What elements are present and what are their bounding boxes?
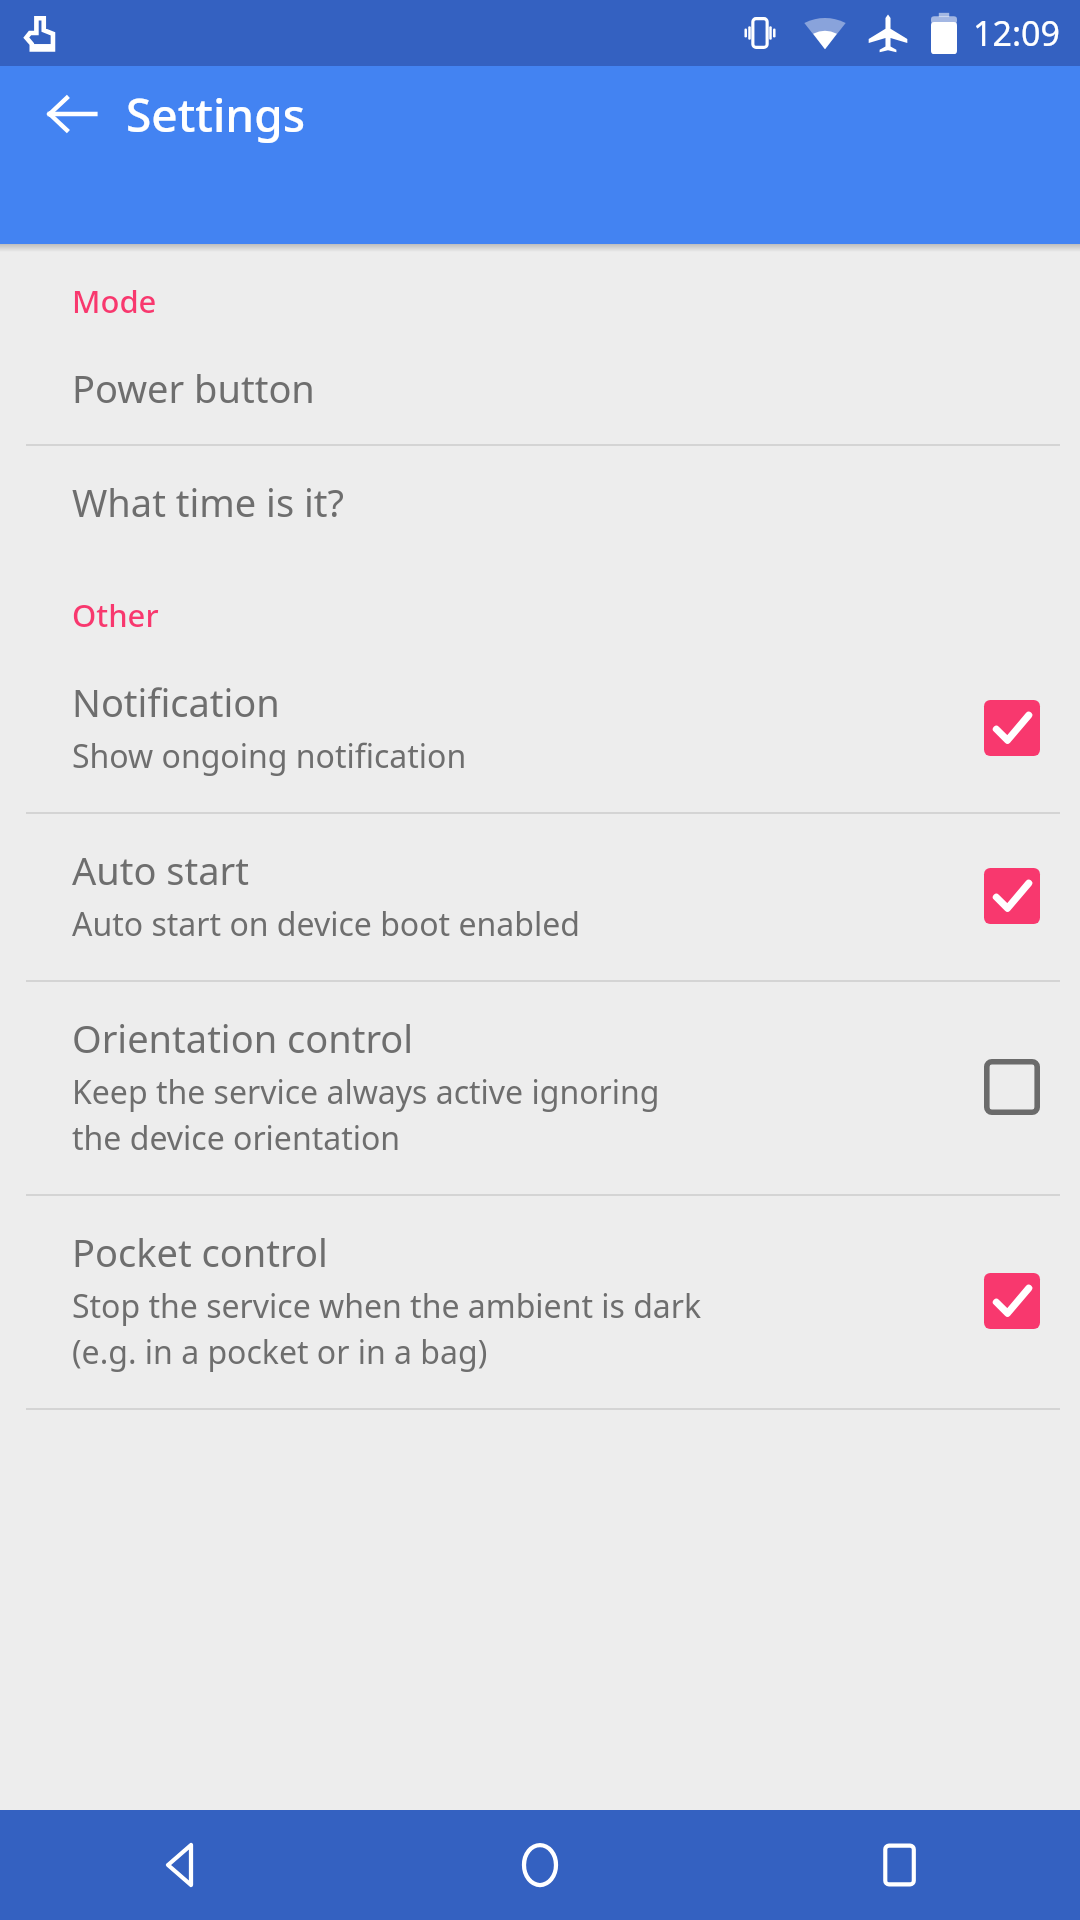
button[interactable]: Unchecked [970,1045,1054,1129]
staticText: Other [72,594,159,636]
button[interactable]: Home [360,1810,720,1920]
staticText: Settings [126,83,306,146]
staticText: (e.g. in a pocket or in a bag) [72,1330,488,1374]
button[interactable]: Orientation control [0,982,1080,1194]
staticText: Power button [72,362,315,414]
staticText: Auto start [72,844,250,896]
button[interactable]: Notification [0,646,1080,812]
button[interactable]: Checked [970,1259,1054,1343]
staticText: What time is it? [72,476,345,528]
button[interactable]: Pocket control [0,1196,1080,1408]
staticText: 12:09 [973,10,1060,56]
staticText: Stop the service when the ambient is dar… [72,1284,702,1328]
button[interactable]: Back [24,66,120,162]
button[interactable]: Power button [0,332,1080,444]
staticText: Mode [72,280,157,322]
button[interactable]: Back [0,1810,360,1920]
staticText: Auto start on device boot enabled [72,902,580,946]
staticText: Notification [72,676,280,728]
button[interactable]: What time is it? [0,446,1080,558]
button[interactable]: Recents [720,1810,1080,1920]
staticText: Orientation control [72,1012,414,1064]
button[interactable]: Checked [970,854,1054,938]
staticText: Keep the service always active ignoring [72,1070,660,1114]
button[interactable]: Auto start [0,814,1080,980]
staticText: the device orientation [72,1116,401,1160]
staticText: Show ongoing notification [72,734,467,778]
button[interactable]: Checked [970,686,1054,770]
staticText: Pocket control [72,1226,328,1278]
